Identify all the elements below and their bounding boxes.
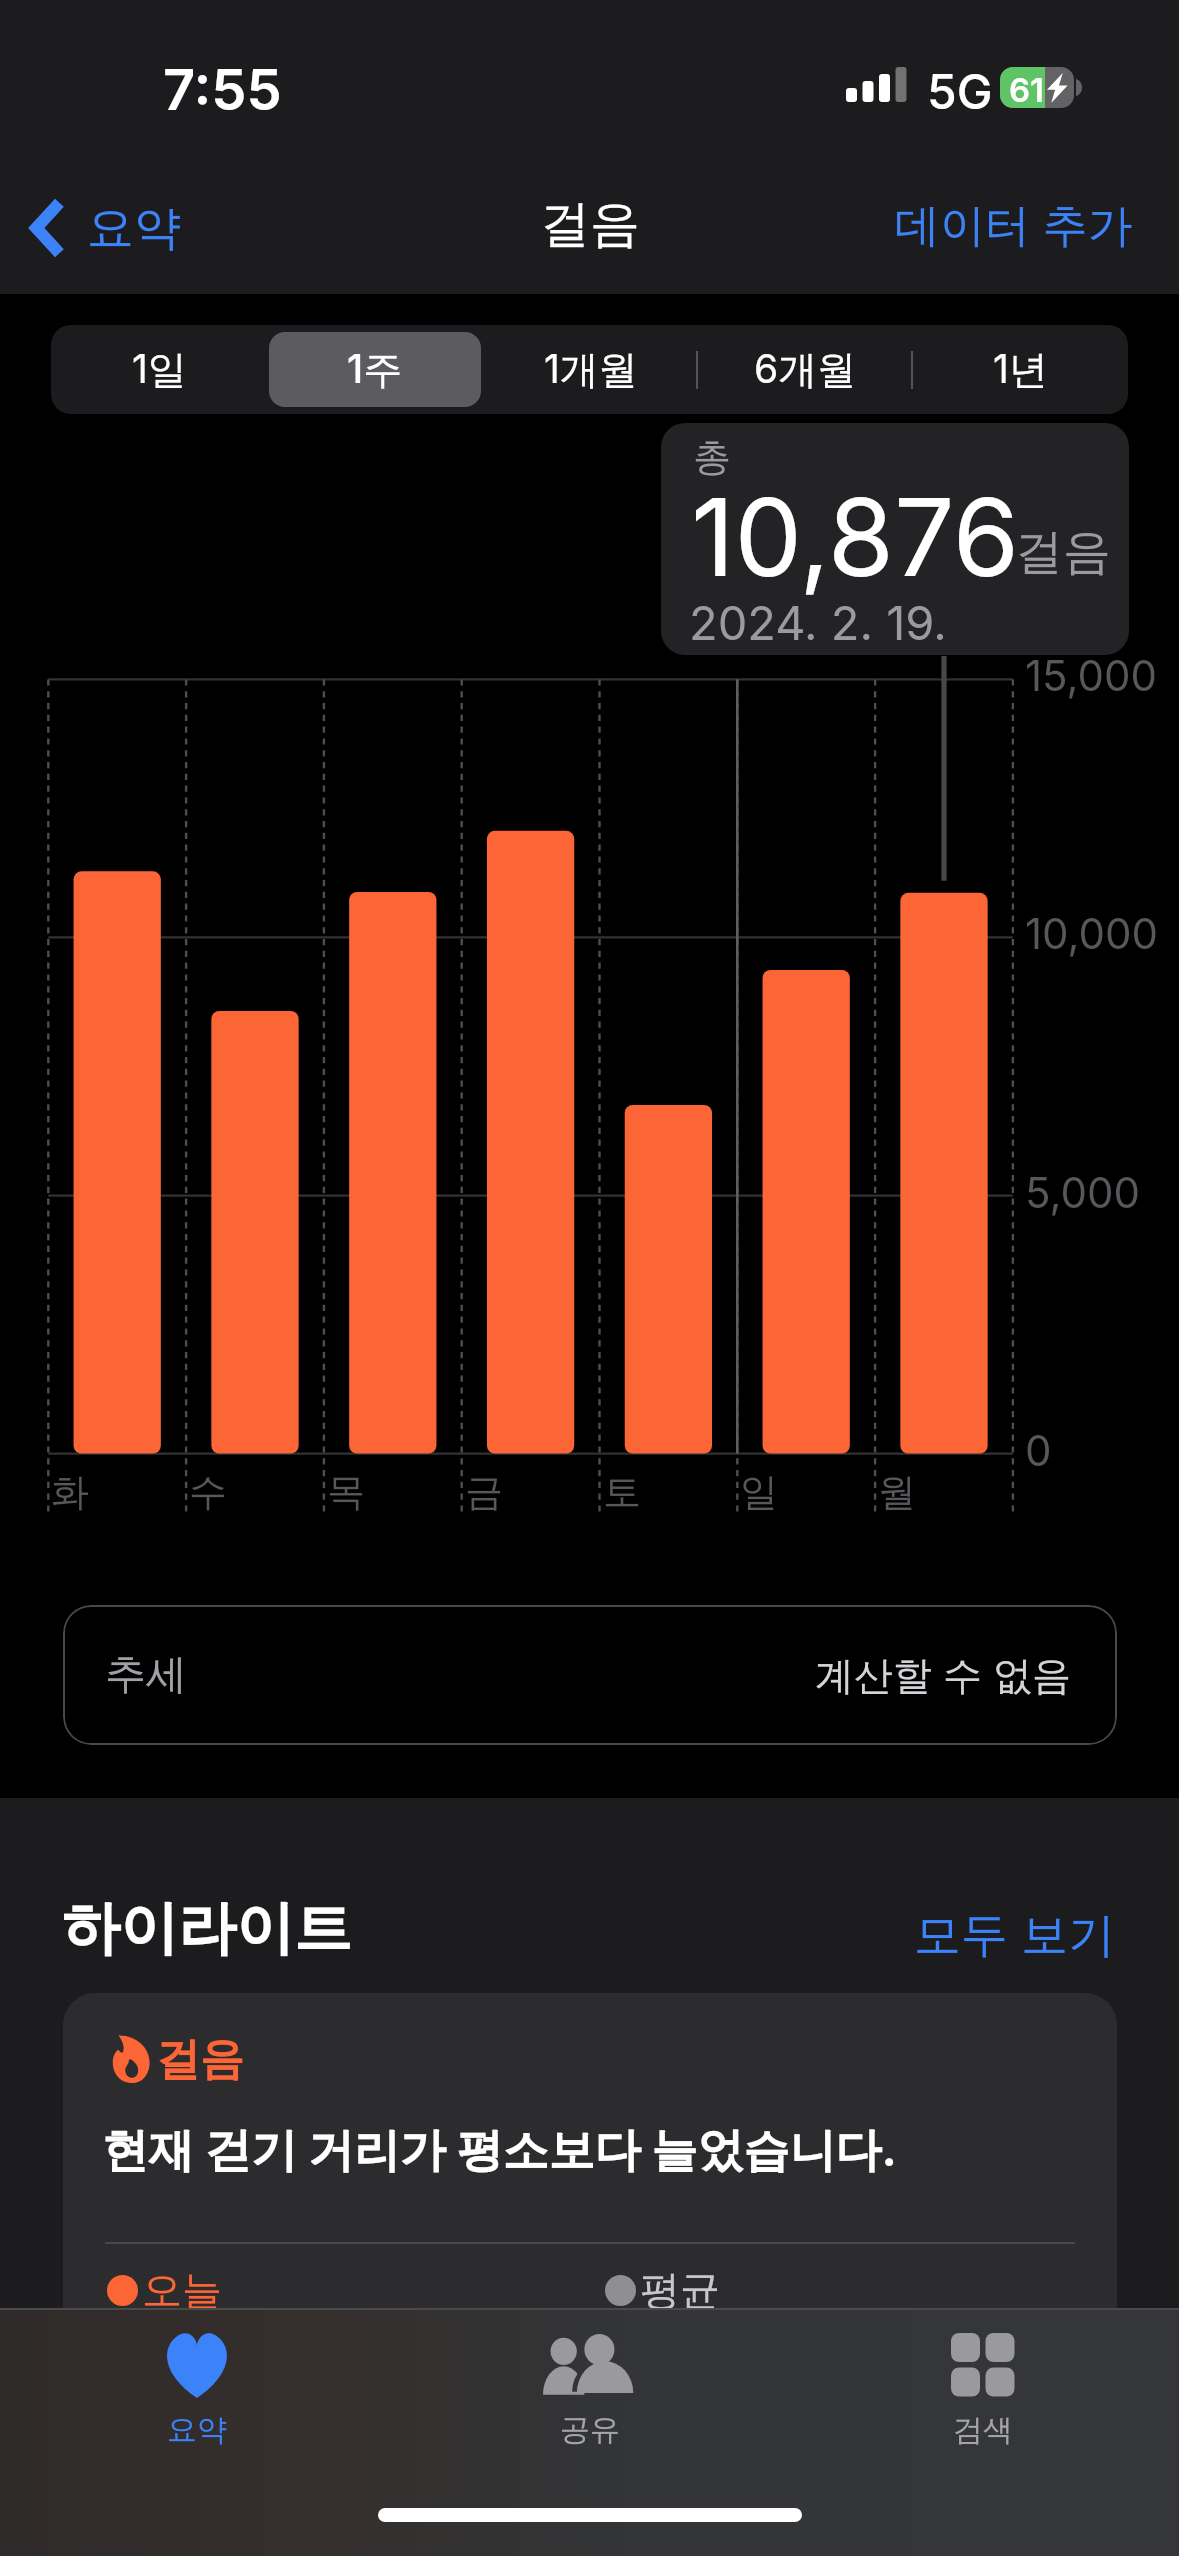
button[interactable]: 1개월	[485, 332, 696, 407]
staticText: 걸음	[156, 2032, 244, 2087]
staticText: 하이라이트	[62, 1892, 352, 1965]
button[interactable]: 요약	[30, 188, 181, 268]
staticText: 5G	[927, 62, 993, 120]
staticText: 목	[327, 1468, 365, 1516]
staticText: 추세	[105, 1649, 187, 1701]
staticText: 오늘	[142, 2265, 222, 2315]
button[interactable]: 모두 보기	[914, 1905, 1116, 1964]
button[interactable]: 걸음	[63, 1993, 1117, 2413]
staticText: 걸음	[1015, 522, 1111, 582]
staticText: 7:55	[163, 56, 282, 124]
staticText: 일	[740, 1468, 778, 1516]
staticText: 10,000	[1025, 908, 1159, 959]
staticText: 수	[189, 1468, 227, 1516]
staticText: 1주	[347, 345, 403, 394]
staticText: 요약	[167, 2411, 227, 2449]
staticText: 공유	[560, 2411, 620, 2449]
button[interactable]: 추세	[63, 1605, 1117, 1745]
staticText: 1일	[132, 345, 187, 394]
staticText: 토	[603, 1468, 641, 1516]
staticText: 1년	[993, 345, 1048, 394]
staticText: 검색	[953, 2411, 1013, 2449]
staticText: 0	[1025, 1425, 1052, 1476]
button[interactable]: 6개월	[700, 332, 911, 407]
staticText: 61	[1009, 70, 1045, 110]
button[interactable]: 1주	[269, 332, 481, 407]
staticText: 6개월	[754, 345, 857, 394]
button[interactable]: 1년	[915, 332, 1126, 407]
staticText: 평균	[640, 2265, 720, 2315]
staticText: 걸음	[540, 193, 640, 256]
staticText: 월	[878, 1468, 916, 1516]
button[interactable]: Summary	[0, 2308, 393, 2478]
staticText: 화	[51, 1468, 89, 1516]
staticText: 5,000	[1025, 1167, 1140, 1218]
button[interactable]: 1일	[53, 332, 265, 407]
staticText: 계산할 수 없음	[815, 1651, 1071, 1700]
staticText: 2024. 2. 19.	[689, 594, 947, 651]
staticText: 15,000	[1025, 650, 1158, 701]
staticText: 총	[693, 433, 731, 481]
staticText: 1개월	[544, 345, 638, 394]
staticText: 요약	[87, 199, 181, 258]
button[interactable]: Browse	[786, 2308, 1179, 2478]
button[interactable]: 데이터 추가	[881, 181, 1147, 270]
staticText: 금	[465, 1468, 503, 1516]
staticText: 10,876	[691, 472, 1020, 601]
staticText: 현재 걷기 거리가 평소보다 늘었습니다.	[102, 2121, 897, 2179]
button[interactable]: Sharing	[393, 2308, 786, 2478]
